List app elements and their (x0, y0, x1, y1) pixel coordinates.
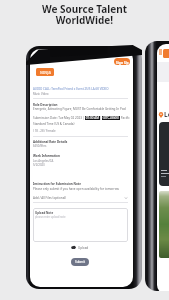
staticText: Standard Time (US & Canada) (33, 122, 75, 126)
button[interactable]: Upload Note (33, 208, 128, 242)
button[interactable]: Sign Up (114, 58, 130, 65)
staticText: 07:00 AM (85, 116, 100, 120)
staticText: We Source Talent WorldWide! (0, 2, 169, 27)
button[interactable]: Add / All Files (optional) (33, 196, 128, 200)
staticText: $450/8hrs (33, 144, 47, 148)
staticText: Additional Rate Details (33, 140, 68, 144)
staticText: (UTC-08:00) (102, 116, 120, 120)
staticText: Work Information (33, 154, 60, 158)
staticText: Sign Up (116, 60, 129, 64)
staticText: Energetic, Attracting Figure, MUST Be Co… (33, 107, 127, 111)
staticText: NINJA (40, 70, 51, 75)
staticText: Submit (75, 260, 86, 264)
staticText: Submission Date: Tue May 02 2023 | (33, 116, 85, 120)
staticText: Los Angeles/CA (33, 159, 54, 163)
staticText: please enter upload note (35, 215, 66, 219)
staticText: Add / All Files (optional) (33, 196, 66, 200)
staticText: Lo (164, 110, 169, 119)
staticText: Pacific (120, 116, 130, 120)
staticText: / 18 - 28 / Female (33, 129, 56, 133)
staticText: Upload Note (35, 211, 54, 215)
staticText: Must: Video (33, 92, 49, 96)
button[interactable]: Upload (30, 245, 130, 250)
staticText: Please only submit if you have open avai… (33, 187, 119, 191)
other: Expand files (124, 196, 128, 200)
button[interactable]: Submit (71, 258, 89, 266)
staticText: Upload (78, 246, 89, 250)
button[interactable]: NINJA (36, 68, 54, 76)
staticText: | (100, 116, 102, 120)
staticText: Role Description (33, 103, 58, 107)
staticText: AUDIO CALL: TeenPool Friend x Event 25/5… (33, 87, 109, 91)
staticText: 5/2/2023 (33, 163, 45, 167)
staticText: Instruction for Submission Note (33, 182, 81, 186)
